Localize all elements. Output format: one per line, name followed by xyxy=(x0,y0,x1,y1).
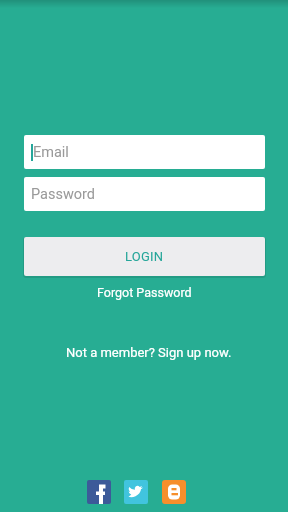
staticText: LOGIN xyxy=(125,249,164,264)
staticText: Email xyxy=(33,144,69,161)
staticText: Password xyxy=(31,186,96,203)
button[interactable]: LOGIN xyxy=(24,237,265,276)
button[interactable]: Not a member? Sign up now. xyxy=(66,345,232,360)
button[interactable]: Email xyxy=(24,135,265,169)
button[interactable] xyxy=(162,480,186,504)
button[interactable]: Forgot Password xyxy=(97,285,192,300)
button[interactable]: Password xyxy=(24,177,265,211)
button[interactable] xyxy=(87,480,111,504)
button[interactable] xyxy=(124,480,148,504)
